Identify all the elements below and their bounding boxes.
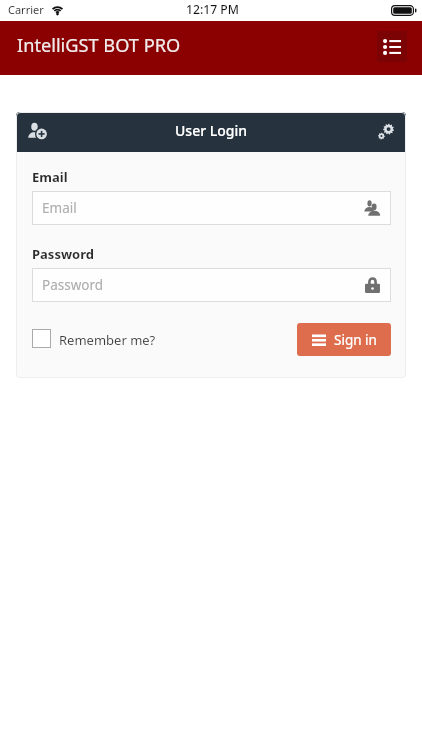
button[interactable]: Email [32, 191, 391, 225]
staticText: User Login [175, 121, 248, 140]
staticText: Email [42, 199, 77, 217]
staticText: 12:17 PM [186, 1, 239, 18]
button[interactable]: Remember me? [32, 330, 156, 349]
staticText: Carrier [8, 2, 44, 17]
button[interactable]: Password [32, 268, 391, 302]
staticText: Sign in [334, 331, 377, 349]
staticText: Password [32, 245, 94, 263]
button[interactable]: Sign in [297, 323, 391, 356]
button[interactable]: Menu [377, 31, 407, 62]
button[interactable]: Settings [372, 119, 398, 145]
staticText: Remember me? [59, 331, 156, 349]
button[interactable]: Register user [24, 119, 50, 145]
staticText: Email [32, 168, 68, 186]
staticText: IntelliGST BOT PRO [17, 33, 181, 58]
staticText: Password [42, 276, 104, 294]
